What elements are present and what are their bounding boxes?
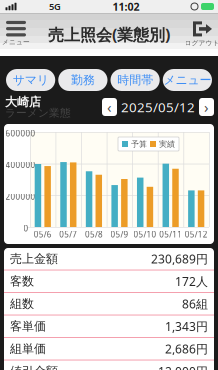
staticText: 組単価 (10, 341, 46, 356)
staticText: 05/8 (85, 229, 103, 240)
staticText: 客数 (10, 274, 34, 289)
staticText: 時間帯 (117, 73, 153, 87)
staticText: 0 (23, 223, 28, 234)
staticText: 2025/05/12 (121, 98, 195, 116)
staticText: 組数 (10, 296, 34, 311)
staticText: 11:02 (112, 0, 139, 14)
staticText: 予算 (131, 139, 147, 149)
staticText: 05/10 (134, 229, 157, 240)
staticText: ログアウト (184, 39, 218, 47)
staticText: 勤務 (71, 73, 95, 87)
staticText: 05/7 (59, 229, 77, 240)
staticText: 売上金額 (10, 251, 58, 266)
button[interactable]: 前の日 (102, 98, 117, 116)
staticText: 1,343円 (165, 318, 208, 334)
staticText: › (204, 97, 209, 117)
staticText: ‹ (107, 97, 112, 117)
staticText: 86組 (182, 296, 208, 312)
staticText: ラーメン業態 (5, 106, 71, 119)
staticText: 売上照会(業態別) (48, 24, 170, 45)
staticText: 2,686円 (165, 341, 208, 357)
button[interactable]: メニュー (3, 13, 29, 56)
staticText: 05/9 (110, 229, 128, 240)
staticText: 5G (49, 0, 61, 13)
staticText: サマリ (13, 73, 49, 87)
staticText: 05/12 (185, 229, 208, 240)
staticText: 大崎店 (5, 95, 41, 109)
button[interactable]: サマリ (6, 69, 55, 91)
button[interactable]: 勤務 (58, 69, 107, 91)
staticText: 200000 (5, 191, 35, 202)
staticText: 05/6 (34, 229, 52, 240)
staticText: 172人 (175, 273, 208, 289)
button[interactable]: 次の日 (199, 98, 214, 116)
staticText: 客単価 (10, 319, 46, 334)
staticText: 実績 (159, 139, 175, 149)
staticText: 400000 (5, 160, 35, 170)
button[interactable]: メニュー (163, 69, 212, 91)
staticText: 12,000円 (158, 363, 208, 370)
staticText: 600000 (5, 128, 35, 139)
staticText: 05/11 (159, 229, 182, 240)
staticText: 値引金額 (10, 364, 58, 370)
staticText: メニュー (2, 38, 30, 46)
staticText: メニュー (163, 73, 211, 87)
button[interactable]: ログアウト (189, 13, 215, 56)
button[interactable]: 時間帯 (110, 69, 160, 91)
staticText: 230,689円 (151, 251, 208, 267)
